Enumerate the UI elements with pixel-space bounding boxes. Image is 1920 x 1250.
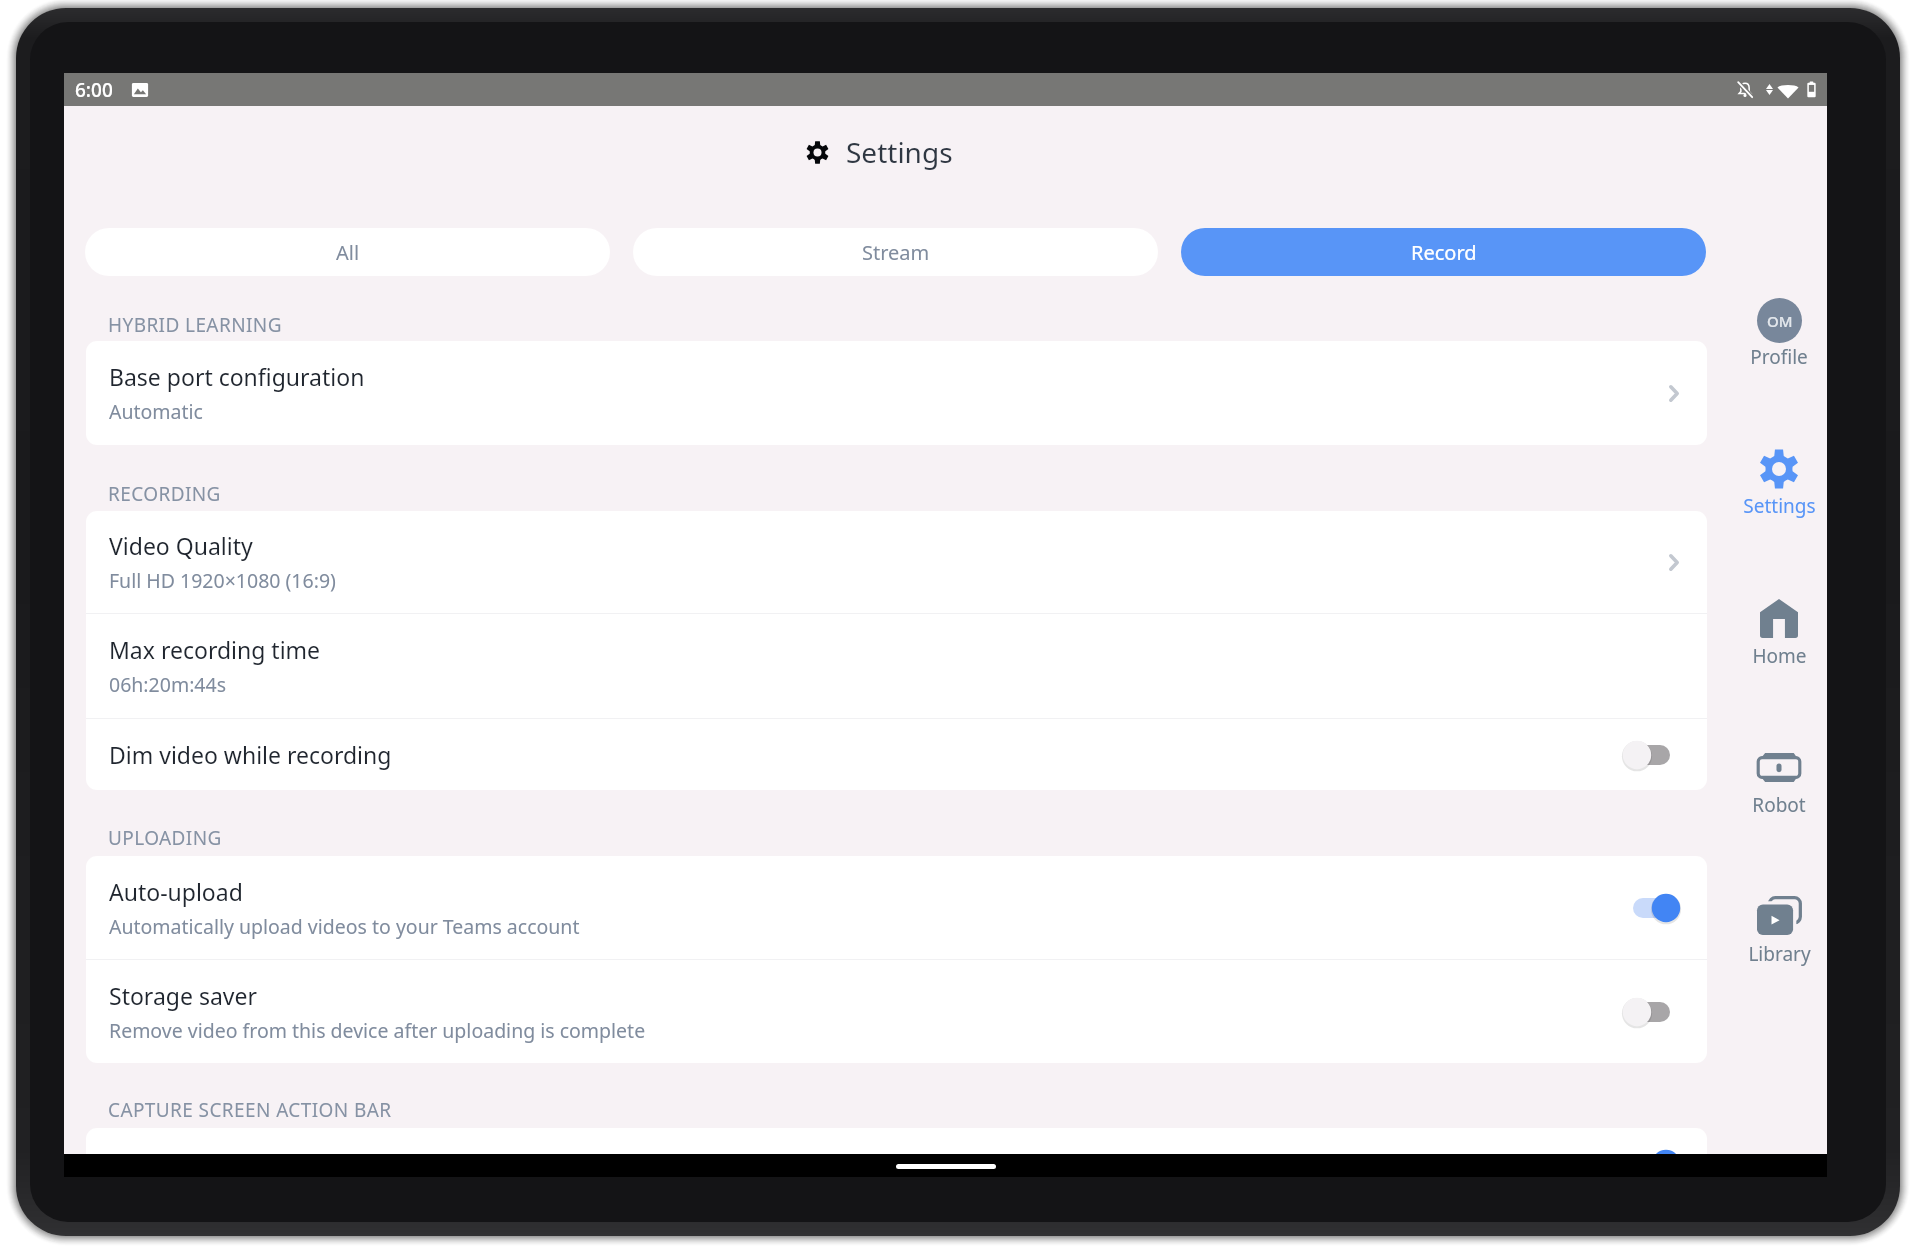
staticText: Video Quality bbox=[109, 530, 253, 561]
button[interactable]: Library bbox=[1724, 890, 1827, 969]
button[interactable]: All bbox=[85, 228, 610, 276]
button[interactable]: Screen action bar bbox=[86, 1128, 1707, 1177]
staticText: UPLOADING bbox=[108, 825, 222, 851]
staticText: Profile bbox=[1750, 344, 1808, 370]
button[interactable]: OM bbox=[1724, 292, 1827, 372]
button[interactable]: Dim video while recording bbox=[86, 719, 1707, 790]
button[interactable]: Settings bbox=[1724, 443, 1827, 521]
staticText: CAPTURE SCREEN ACTION BAR bbox=[108, 1097, 392, 1123]
staticText: Storage saver bbox=[109, 980, 257, 1011]
button[interactable]: Max recording time bbox=[86, 614, 1707, 718]
staticText: 6:00 bbox=[75, 77, 113, 103]
staticText: OM bbox=[1767, 311, 1793, 331]
staticText: Record bbox=[1411, 239, 1477, 266]
staticText: Max recording time bbox=[109, 634, 321, 665]
staticText: Dim video while recording bbox=[109, 739, 392, 770]
button[interactable]: Switch off bbox=[1614, 995, 1674, 1029]
staticText: Robot bbox=[1752, 792, 1806, 818]
staticText: Settings bbox=[846, 133, 953, 171]
button[interactable]: Base port configuration bbox=[86, 341, 1707, 445]
staticText: Stream bbox=[862, 239, 930, 266]
button[interactable]: Video Quality bbox=[86, 511, 1707, 613]
staticText: Auto-upload bbox=[109, 876, 243, 907]
staticText: Library bbox=[1748, 941, 1811, 967]
button[interactable]: Robot bbox=[1724, 747, 1827, 820]
staticText: Automatically upload videos to your Team… bbox=[109, 913, 580, 940]
button[interactable]: Stream bbox=[633, 228, 1158, 276]
button[interactable]: Switch off bbox=[1614, 738, 1674, 772]
button[interactable]: Switch on bbox=[1623, 1147, 1683, 1177]
staticText: Base port configuration bbox=[109, 361, 365, 392]
staticText: RECORDING bbox=[108, 481, 221, 507]
staticText: 06h:20m:44s bbox=[109, 671, 227, 698]
staticText: Home bbox=[1752, 643, 1807, 669]
button[interactable]: Storage saver bbox=[86, 960, 1707, 1063]
staticText: All bbox=[336, 239, 360, 266]
button[interactable]: Switch on bbox=[1623, 891, 1683, 925]
button[interactable]: Record bbox=[1181, 228, 1706, 276]
button[interactable]: Home bbox=[1724, 593, 1827, 671]
staticText: Automatic bbox=[109, 398, 203, 425]
staticText: Screen action bar bbox=[109, 1148, 297, 1177]
staticText: Settings bbox=[1743, 493, 1816, 519]
staticText: Full HD 1920×1080 (16:9) bbox=[109, 567, 336, 594]
button[interactable]: Auto-upload bbox=[86, 856, 1707, 959]
staticText: HYBRID LEARNING bbox=[108, 312, 282, 338]
staticText: Remove video from this device after uplo… bbox=[109, 1017, 646, 1044]
